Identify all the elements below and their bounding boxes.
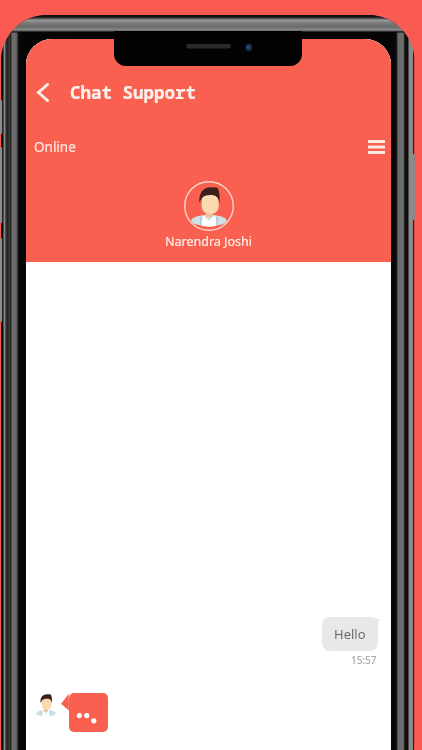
- button[interactable]: Hello: [322, 617, 378, 651]
- staticText: Online: [34, 138, 76, 156]
- staticText: Hello: [334, 625, 366, 643]
- button[interactable]: Back: [26, 75, 60, 109]
- button[interactable]: Menu: [361, 132, 391, 162]
- staticText: Narendra Joshi: [165, 233, 252, 250]
- staticText: Chat Support: [70, 80, 196, 104]
- button[interactable]: Typing indicator: [69, 693, 108, 732]
- staticText: 15:57: [351, 653, 377, 667]
